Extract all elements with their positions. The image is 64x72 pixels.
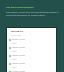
staticText: 5 tasks due: [11, 34, 22, 37]
button[interactable]: Task status: [9, 38, 56, 46]
staticText: Today: [12, 58, 17, 60]
button[interactable]: Task status: [9, 62, 56, 70]
button[interactable]: Task status: [9, 70, 56, 72]
button[interactable]: Task status: [9, 46, 56, 54]
staticText: Today: [12, 66, 17, 68]
button[interactable]: Task status: [9, 54, 56, 62]
staticText: Get more done together: [6, 6, 59, 9]
staticText: Workspace: [11, 30, 23, 33]
staticText: Plan projects, assign work and keep ever…: [6, 11, 59, 17]
staticText: Today: [12, 50, 17, 52]
staticText: Design review: [12, 62, 26, 65]
staticText: Design review: [12, 38, 26, 41]
staticText: Design review: [12, 46, 26, 49]
staticText: Today: [12, 42, 17, 44]
staticText: Design review: [12, 54, 26, 57]
staticText: Design review: [12, 70, 26, 72]
